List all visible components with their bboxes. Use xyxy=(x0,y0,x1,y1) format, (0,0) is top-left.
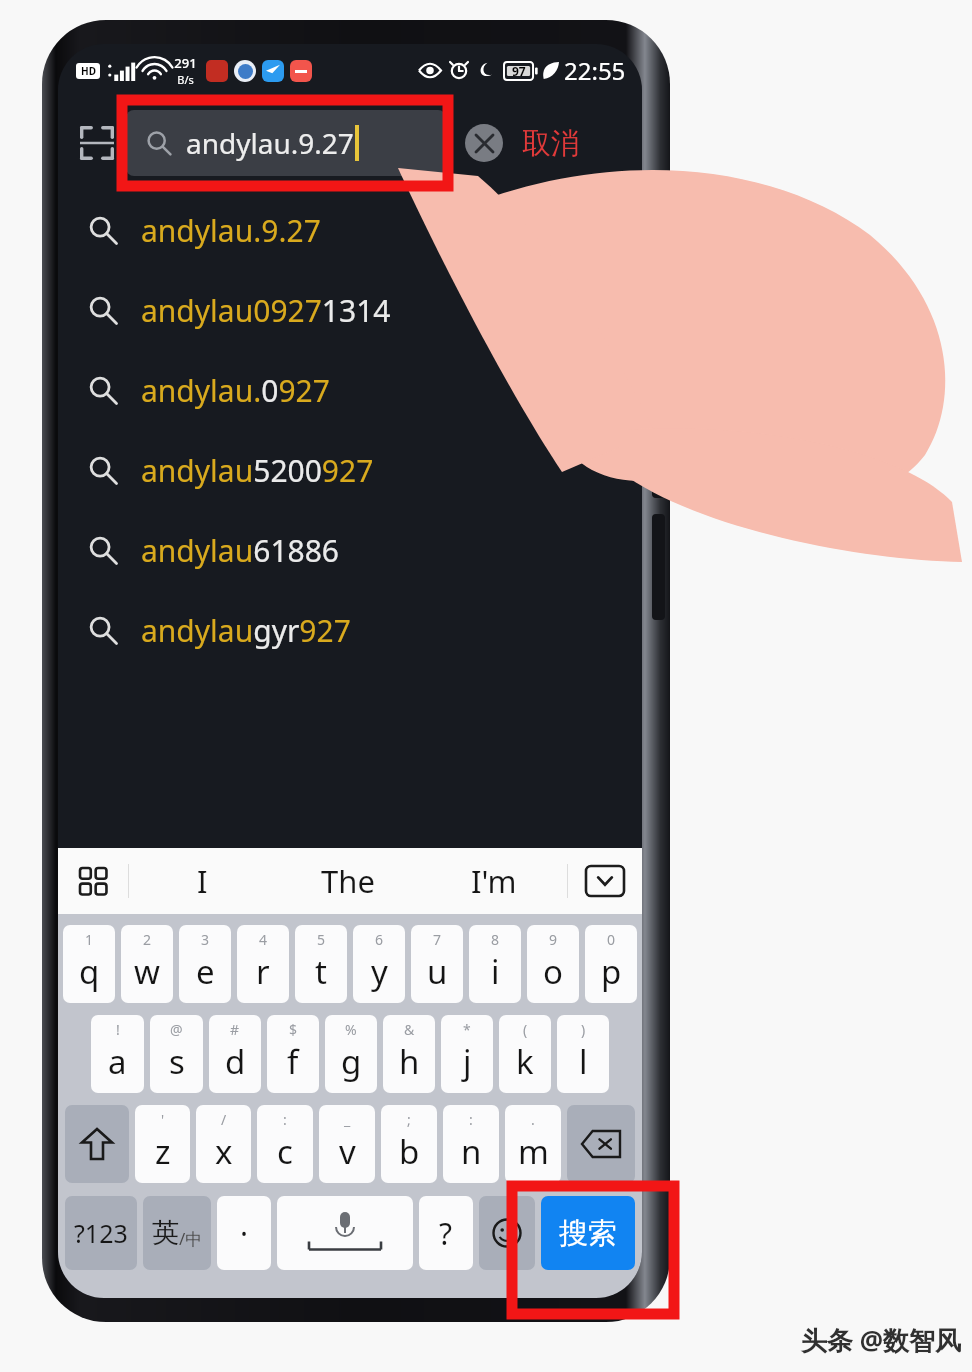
staticText: l xyxy=(579,1039,588,1084)
button[interactable]: Backspace xyxy=(567,1105,635,1183)
staticText: b xyxy=(399,1129,420,1174)
staticText: 2 xyxy=(143,930,152,949)
button[interactable]: . xyxy=(505,1105,561,1183)
button[interactable]: 5 xyxy=(295,925,347,1003)
staticText: f xyxy=(287,1039,299,1084)
staticText: · xyxy=(240,1213,249,1254)
staticText: 0 xyxy=(607,930,616,949)
button[interactable]: 3 xyxy=(179,925,231,1003)
button[interactable]: 8 xyxy=(469,925,521,1003)
button[interactable]: 7 xyxy=(411,925,463,1003)
staticText: g xyxy=(341,1039,362,1084)
staticText: 4 xyxy=(259,930,268,949)
staticText: 8 xyxy=(491,930,500,949)
button[interactable]: ! xyxy=(91,1015,144,1093)
staticText: t xyxy=(315,949,327,994)
staticText: a xyxy=(108,1039,127,1084)
button[interactable]: $ xyxy=(267,1015,319,1093)
staticText: andylau.9.27 xyxy=(141,210,321,251)
staticText: z xyxy=(155,1129,171,1174)
staticText: . xyxy=(531,1110,535,1129)
staticText: 头条 @数智风 xyxy=(801,1322,962,1358)
staticText: $ xyxy=(289,1020,298,1039)
staticText: 7 xyxy=(433,930,442,949)
button[interactable]: ?123 xyxy=(65,1196,137,1270)
button[interactable]: Space xyxy=(277,1196,413,1270)
button[interactable]: 6 xyxy=(353,925,405,1003)
staticText: j xyxy=(463,1039,472,1084)
staticText: m xyxy=(518,1129,549,1174)
staticText: q xyxy=(79,949,100,994)
button[interactable]: # xyxy=(209,1015,261,1093)
button[interactable]: ' xyxy=(135,1105,190,1183)
staticText: I xyxy=(197,860,208,902)
staticText: w xyxy=(134,949,160,994)
button[interactable]: Emoji xyxy=(479,1196,535,1270)
button[interactable]: andylau.0927 xyxy=(58,350,642,430)
button[interactable]: * xyxy=(441,1015,493,1093)
staticText: 22:55 xyxy=(564,54,626,87)
button[interactable]: ) xyxy=(557,1015,609,1093)
button[interactable]: Hide keyboard xyxy=(568,848,642,914)
staticText: andylau.9.27 xyxy=(186,124,354,162)
staticText: : xyxy=(469,1110,473,1129)
button[interactable]: : xyxy=(443,1105,499,1183)
button[interactable]: 1 xyxy=(63,925,115,1003)
staticText: ' xyxy=(161,1110,165,1129)
staticText: i xyxy=(491,949,500,994)
staticText: andylau09271314 xyxy=(141,290,391,331)
staticText: HD xyxy=(81,64,96,78)
staticText: _ xyxy=(344,1110,351,1129)
staticText: 9 xyxy=(549,930,558,949)
button[interactable]: 英 xyxy=(143,1196,211,1270)
button[interactable]: andylau09271314 xyxy=(58,270,642,350)
staticText: andylau.0927 xyxy=(141,370,330,411)
button[interactable]: / xyxy=(196,1105,251,1183)
button[interactable]: andylau.9.27 xyxy=(126,110,446,176)
staticText: / xyxy=(221,1110,227,1129)
button[interactable]: I xyxy=(129,848,275,914)
staticText: /中 xyxy=(179,1227,203,1250)
staticText: 英 xyxy=(152,1216,179,1250)
staticText: o xyxy=(543,949,563,994)
staticText: : xyxy=(283,1110,287,1129)
staticText: I'm xyxy=(471,860,517,902)
button[interactable]: 取消 xyxy=(516,115,586,172)
staticText: andylau5200927 xyxy=(141,450,374,491)
button[interactable]: 搜索 xyxy=(541,1196,635,1270)
button[interactable]: 9 xyxy=(527,925,579,1003)
button[interactable]: andylau.9.27 xyxy=(58,190,642,270)
button[interactable]: % xyxy=(325,1015,377,1093)
button[interactable]: I'm xyxy=(421,848,567,914)
button[interactable]: The xyxy=(275,848,421,914)
button[interactable]: ( xyxy=(499,1015,551,1093)
button[interactable]: : xyxy=(257,1105,313,1183)
button[interactable]: 4 xyxy=(237,925,289,1003)
button[interactable]: andylau61886 xyxy=(58,510,642,590)
button[interactable]: 0 xyxy=(585,925,637,1003)
button[interactable]: _ xyxy=(319,1105,375,1183)
button[interactable]: Scan code xyxy=(70,116,124,170)
button[interactable]: andylaugyr927 xyxy=(58,590,642,670)
staticText: ( xyxy=(523,1020,528,1039)
button[interactable]: ; xyxy=(381,1105,437,1183)
button[interactable]: Keyboard menu xyxy=(58,848,128,914)
staticText: x xyxy=(215,1129,233,1174)
staticText: @ xyxy=(170,1020,183,1039)
button[interactable]: @ xyxy=(150,1015,203,1093)
staticText: d xyxy=(225,1039,246,1084)
staticText: * xyxy=(463,1020,471,1039)
button[interactable]: Shift xyxy=(65,1105,129,1183)
staticText: # xyxy=(230,1020,240,1039)
staticText: 搜索 xyxy=(559,1215,617,1252)
button[interactable]: 2 xyxy=(121,925,173,1003)
button[interactable]: · xyxy=(217,1196,271,1270)
button[interactable]: andylau5200927 xyxy=(58,430,642,510)
button[interactable]: Clear text xyxy=(456,115,512,171)
staticText: 3 xyxy=(201,930,210,949)
staticText: c xyxy=(277,1129,293,1174)
staticText: 取消 xyxy=(522,125,580,162)
staticText: 6 xyxy=(375,930,384,949)
button[interactable]: ? xyxy=(419,1196,473,1270)
button[interactable]: & xyxy=(383,1015,435,1093)
